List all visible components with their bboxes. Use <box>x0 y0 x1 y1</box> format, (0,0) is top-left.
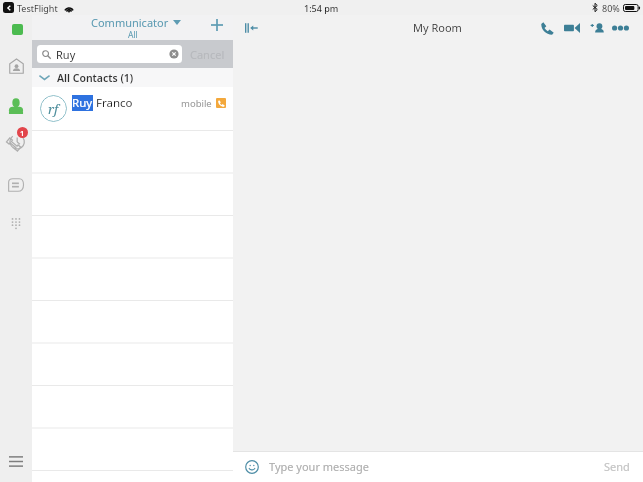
button[interactable]: All Contacts (1) <box>32 68 233 87</box>
staticText: Cancel <box>190 47 225 62</box>
staticText: My Room <box>413 20 462 35</box>
staticText: TestFlight <box>17 2 58 14</box>
button[interactable]: Call <box>536 17 558 39</box>
staticText: Ruy <box>72 95 93 111</box>
button[interactable]: Menu <box>4 449 28 473</box>
staticText: Type your message <box>269 459 369 474</box>
button[interactable]: Collapse sidebar <box>240 17 262 39</box>
button[interactable]: Contacts <box>4 94 28 118</box>
button[interactable]: Add contact <box>205 13 229 37</box>
button[interactable]: Send <box>604 459 630 474</box>
button[interactable]: Video call <box>561 17 583 39</box>
button[interactable]: Presence <box>5 17 29 41</box>
staticText: All <box>128 29 138 39</box>
button[interactable]: Ruy <box>37 45 182 63</box>
staticText: 1:54 pm <box>304 2 339 14</box>
staticText: 80% <box>602 2 620 14</box>
staticText: Franco <box>93 95 133 111</box>
button[interactable]: Emoji <box>242 457 262 477</box>
button[interactable]: Recent calls <box>3 126 29 152</box>
staticText: All Contacts (1) <box>57 71 134 85</box>
button[interactable]: Directory <box>4 54 28 78</box>
staticText: rf <box>48 100 59 118</box>
staticText: Send <box>604 459 630 474</box>
button[interactable]: Add participant <box>586 17 608 39</box>
staticText: Communicator <box>91 15 169 30</box>
button[interactable]: Cancel <box>190 47 228 62</box>
button[interactable]: More options <box>609 17 631 39</box>
button[interactable]: Communicator <box>91 15 181 40</box>
staticText: mobile <box>181 97 212 110</box>
staticText: 1 <box>20 128 25 138</box>
button[interactable]: Messages <box>4 173 28 197</box>
button[interactable]: Dialpad <box>4 212 28 236</box>
button[interactable]: rf <box>32 87 233 130</box>
staticText: Ruy <box>56 47 76 62</box>
